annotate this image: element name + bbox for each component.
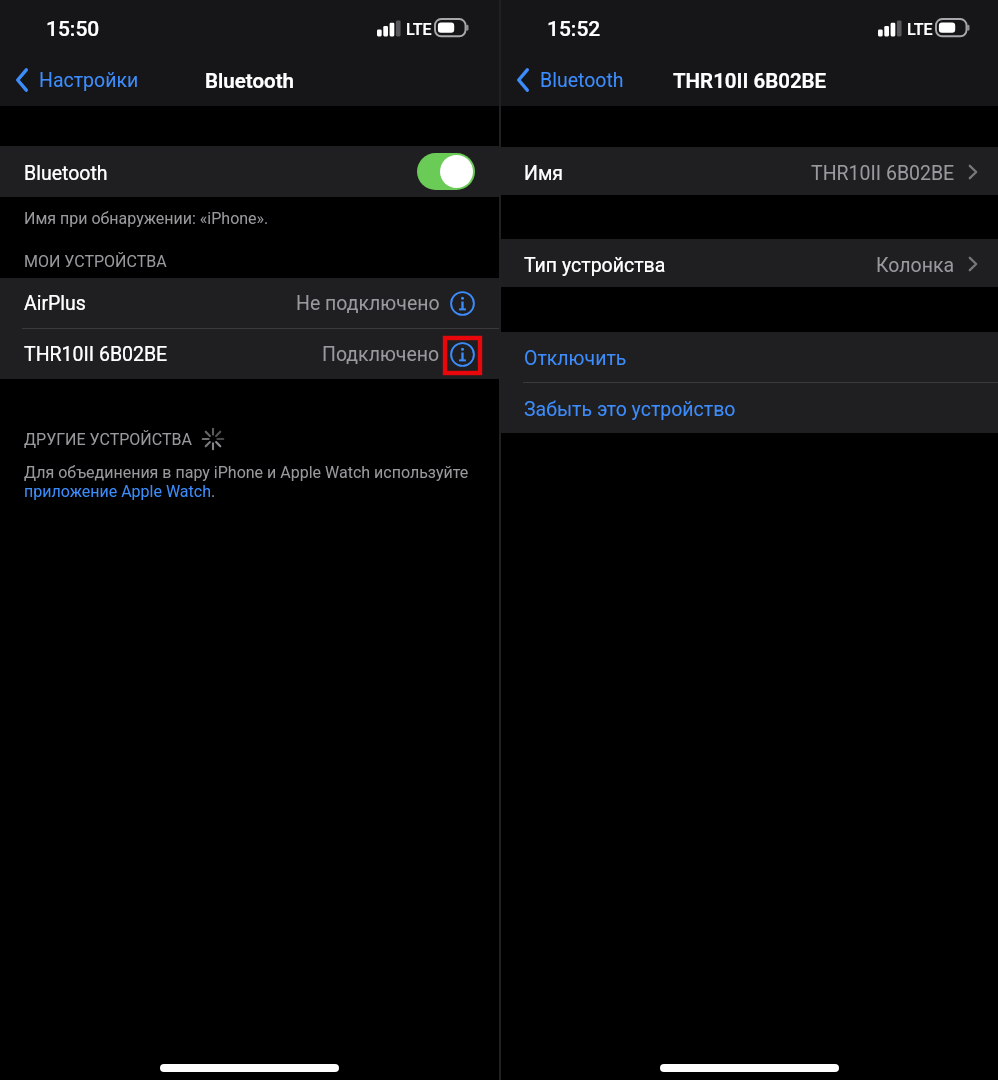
staticText: THR10II 6B02BE [811, 162, 955, 185]
staticText: Подключено [322, 343, 440, 366]
staticText: Тип устройства [524, 254, 666, 277]
staticText: Имя [524, 162, 564, 185]
staticText: THR10II 6B02BE [24, 343, 168, 366]
button[interactable]: THR10II 6B02BE [0, 329, 499, 379]
staticText: Настройки [39, 69, 139, 92]
button[interactable]: Bluetooth toggle [417, 153, 475, 190]
button[interactable]: Bluetooth [0, 146, 499, 197]
button[interactable]: Тип устройства [501, 239, 998, 287]
staticText: МОИ УСТРОЙСТВА [24, 252, 167, 271]
staticText: 15:50 [46, 17, 100, 42]
staticText: Bluetooth [205, 69, 294, 93]
staticText: 15:52 [547, 17, 601, 42]
staticText: THR10II 6B02BE [673, 69, 827, 93]
staticText: Не подключено [296, 292, 440, 315]
button[interactable]: Device info [450, 342, 475, 367]
button[interactable]: AirPlus [0, 278, 499, 328]
button[interactable]: More info about AirPlus [443, 284, 481, 322]
staticText: Имя при обнаружении: «iPhone». [24, 209, 269, 228]
staticText: . [211, 482, 216, 501]
button[interactable]: Забыть это устройство [501, 383, 998, 433]
staticText: LTE [406, 20, 432, 39]
staticText: Колонка [876, 254, 955, 277]
button[interactable]: Device info [450, 291, 475, 316]
staticText: Для объединения в пару iPhone и Apple Wa… [24, 463, 469, 482]
staticText: Забыть это устройство [524, 398, 736, 421]
staticText: ДРУГИЕ УСТРОЙСТВА [24, 430, 192, 449]
button[interactable]: More info about THR10II 6B02BE [443, 335, 481, 373]
staticText: Отключить [524, 347, 627, 370]
staticText: Bluetooth [540, 69, 624, 92]
staticText: LTE [907, 20, 933, 39]
button[interactable]: Back to Настройки [0, 68, 149, 92]
button[interactable]: Имя [501, 147, 998, 195]
button[interactable]: приложение Apple Watch [24, 482, 211, 501]
staticText: Bluetooth [24, 162, 108, 185]
staticText: AirPlus [24, 292, 86, 315]
button[interactable]: Отключить [501, 332, 998, 382]
button[interactable]: Back to Bluetooth [501, 68, 634, 92]
